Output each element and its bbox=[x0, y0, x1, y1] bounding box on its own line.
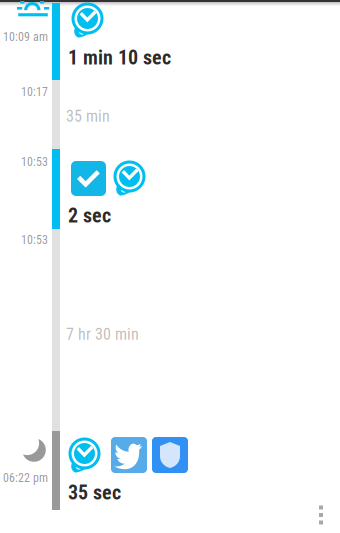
staticText: 10:53 bbox=[21, 155, 48, 169]
button[interactable]: 2 sec bbox=[68, 159, 228, 223]
button[interactable]: 1 min 10 sec bbox=[68, 2, 228, 66]
staticText: 10:09 am bbox=[3, 30, 48, 44]
staticText: 35 min bbox=[66, 107, 110, 126]
staticText: 06:22 pm bbox=[3, 471, 48, 485]
staticText: 35 sec bbox=[68, 481, 121, 504]
button[interactable]: 35 sec bbox=[68, 437, 228, 501]
staticText: 2 sec bbox=[68, 204, 111, 227]
button[interactable]: More options bbox=[308, 498, 334, 532]
staticText: 10:17 bbox=[21, 85, 48, 99]
staticText: 10:53 bbox=[21, 233, 48, 247]
staticText: 1 min 10 sec bbox=[68, 46, 171, 69]
staticText: 7 hr 30 min bbox=[66, 325, 139, 344]
